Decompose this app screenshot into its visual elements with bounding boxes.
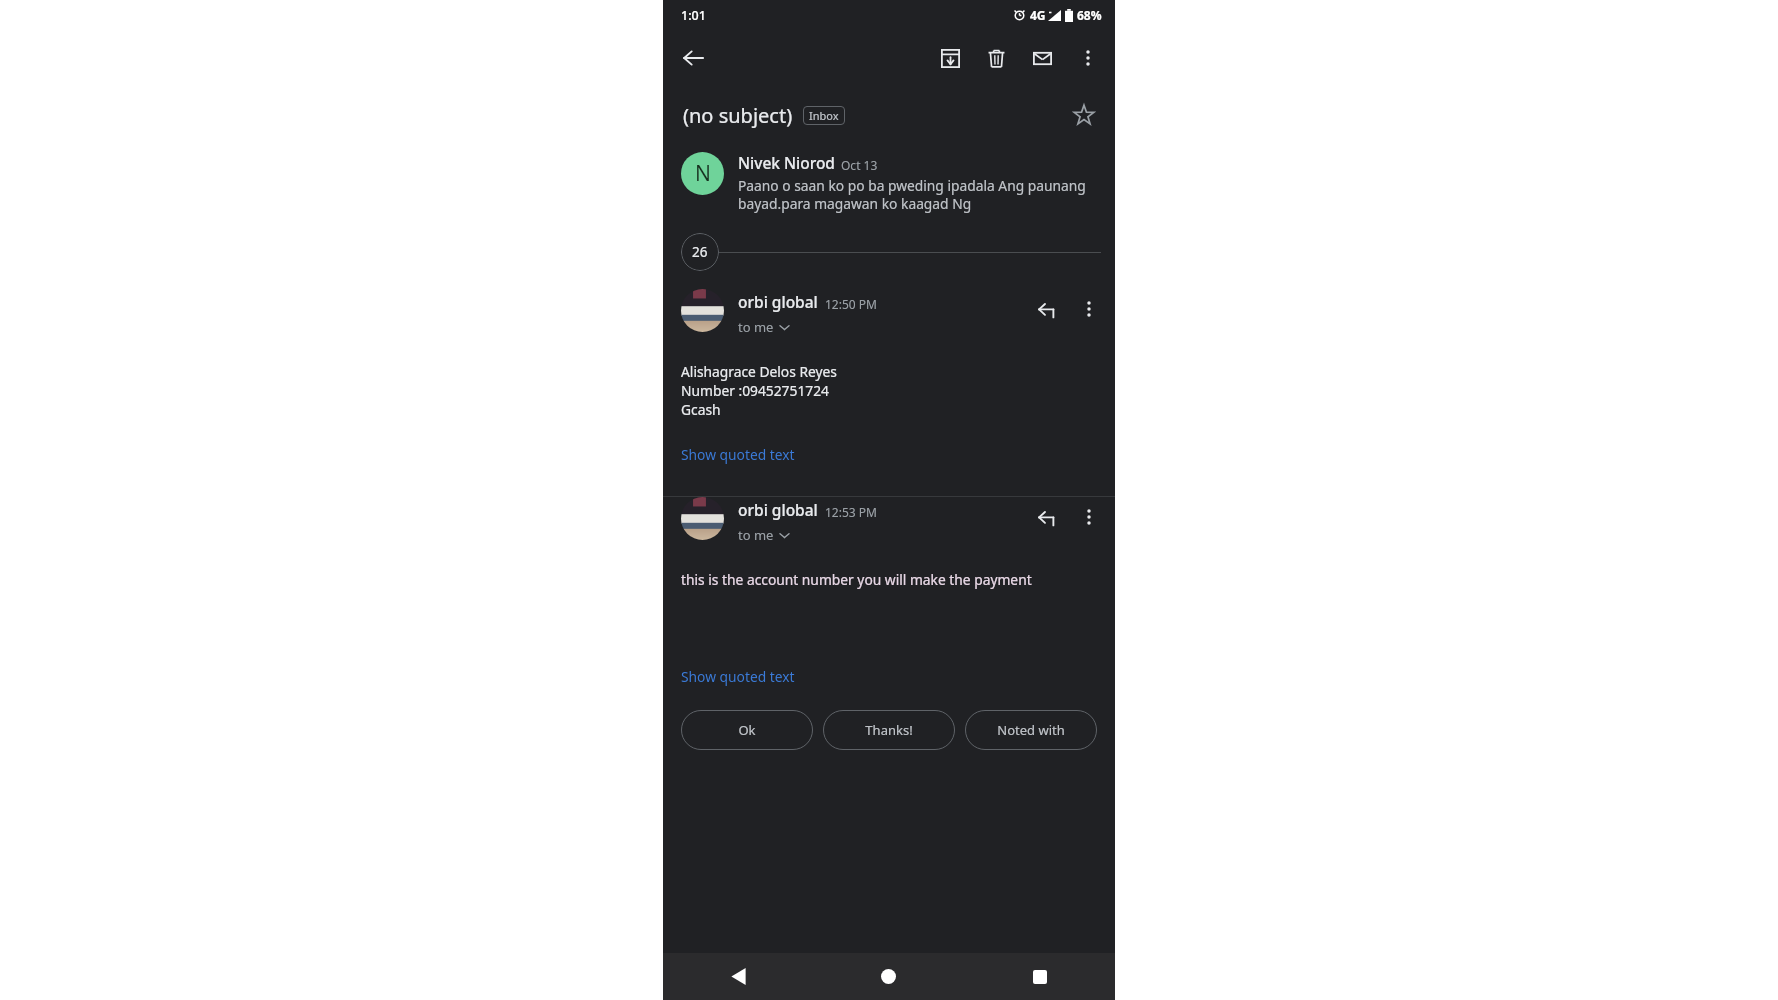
staticText: Show quoted text — [681, 667, 795, 686]
button[interactable]: More options — [1069, 289, 1109, 329]
staticText: to me — [738, 526, 774, 544]
button[interactable]: More options — [1065, 35, 1111, 81]
button[interactable]: Recents — [964, 953, 1115, 1000]
button[interactable]: Reply — [1025, 289, 1069, 333]
button[interactable]: Noted with — [965, 710, 1097, 750]
staticText: orbi global — [738, 499, 818, 520]
staticText: 1:01 — [681, 7, 706, 24]
button[interactable]: Show quoted text — [681, 445, 795, 464]
staticText: Paano o saan ko po ba pweding ipadala An… — [738, 176, 1097, 213]
button[interactable]: More options — [1069, 497, 1109, 537]
staticText: 4G — [1030, 7, 1046, 23]
button[interactable]: Archive — [927, 35, 973, 81]
staticText: Number :09452751724 — [681, 381, 829, 400]
button[interactable]: Star — [1061, 92, 1107, 138]
staticText: N — [695, 159, 711, 188]
staticText: Show quoted text — [681, 445, 795, 464]
staticText: orbi global — [738, 291, 818, 312]
button[interactable]: N — [681, 152, 1097, 213]
staticText: Alishagrace Delos Reyes — [681, 362, 837, 381]
button[interactable]: Back — [663, 953, 813, 1000]
staticText: to me — [738, 318, 774, 336]
staticText: Oct 13 — [841, 157, 878, 173]
staticText: (no subject) — [683, 102, 793, 129]
staticText: Noted with — [997, 721, 1065, 739]
button[interactable]: Ok — [681, 710, 813, 750]
button[interactable]: Thanks! — [823, 710, 955, 750]
staticText: 12:50 PM — [825, 296, 877, 312]
button[interactable]: 26 — [681, 233, 719, 271]
staticText: 26 — [692, 243, 708, 261]
button[interactable]: to me — [738, 526, 790, 544]
button[interactable]: Back — [669, 34, 717, 82]
button[interactable]: Inbox — [809, 108, 839, 123]
staticText: Gcash — [681, 400, 721, 419]
button[interactable]: Delete — [973, 35, 1019, 81]
button[interactable]: to me — [738, 318, 790, 336]
button[interactable]: Reply — [1025, 497, 1069, 541]
staticText: 12:53 PM — [825, 504, 877, 520]
staticText: Nivek Niorod — [738, 152, 835, 173]
staticText: Ok — [738, 721, 756, 739]
staticText: Inbox — [809, 108, 839, 123]
button[interactable]: Show quoted text — [681, 667, 795, 686]
staticText: Thanks! — [865, 721, 913, 739]
staticText: 68% — [1077, 7, 1102, 23]
staticText: this is the account number you will make… — [681, 570, 1032, 589]
button[interactable]: Mark as unread — [1019, 35, 1065, 81]
button[interactable]: Home — [813, 953, 964, 1000]
